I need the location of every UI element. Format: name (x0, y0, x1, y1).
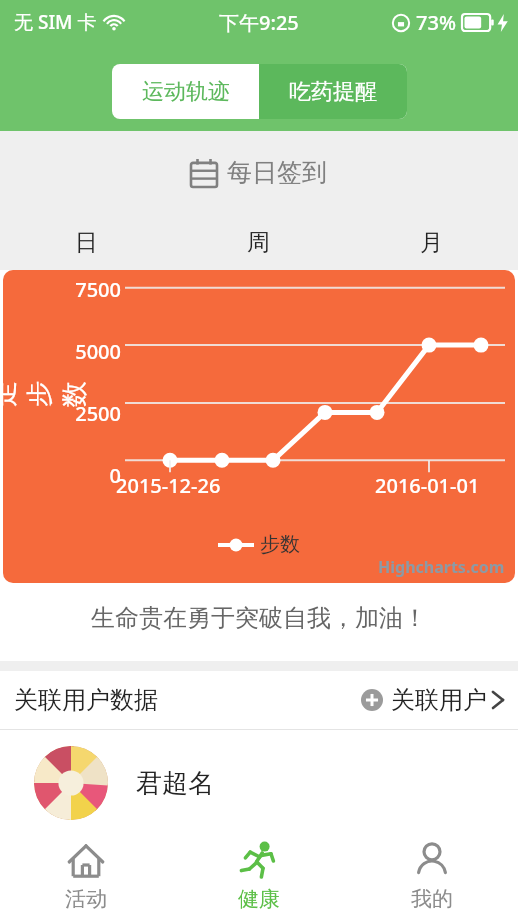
staticText: 关联用户数据 (14, 685, 158, 715)
staticText: 周 (247, 228, 270, 257)
staticText: 0 (63, 462, 121, 489)
staticText: 7500 (63, 276, 121, 303)
staticText: 生命贵在勇于突破自我，加油！ (0, 603, 518, 633)
staticText: 2015-12-26 (116, 472, 221, 499)
staticText: 日 (75, 228, 98, 257)
staticText: 吃药提醒 (289, 78, 377, 106)
staticText: 5000 (63, 338, 121, 365)
staticText: 关联用户 (391, 685, 487, 715)
button[interactable]: 活动 (0, 832, 172, 920)
staticText: 每日签到 (227, 157, 327, 188)
button[interactable]: 健康 (172, 832, 345, 920)
staticText: 活动 (65, 886, 107, 912)
staticText: 2500 (63, 400, 121, 427)
button[interactable]: 运动轨迹 (112, 64, 259, 119)
staticText: 2016-01-01 (375, 472, 480, 499)
staticText: 下午9:25 (219, 9, 299, 36)
staticText: 运动轨迹 (142, 78, 230, 106)
staticText: Highcharts.com (378, 556, 505, 578)
button[interactable]: 周 (172, 214, 345, 270)
staticText: 行走步数 (3, 373, 91, 407)
staticText: 健康 (238, 886, 280, 912)
button[interactable]: 月 (345, 214, 518, 270)
staticText: 我的 (411, 886, 453, 912)
button[interactable]: 日 (0, 214, 172, 270)
button[interactable]: 君超名 (6, 738, 256, 828)
staticText: 君超名 (136, 767, 214, 800)
button[interactable]: 我的 (345, 832, 518, 920)
staticText: 步数 (260, 532, 300, 557)
staticText: 73% (416, 9, 456, 36)
button[interactable]: 吃药提醒 (259, 64, 407, 119)
staticText: 月 (420, 228, 443, 257)
staticText: 无 SIM 卡 (14, 9, 97, 35)
button[interactable]: 关联用户数据 (0, 671, 518, 729)
